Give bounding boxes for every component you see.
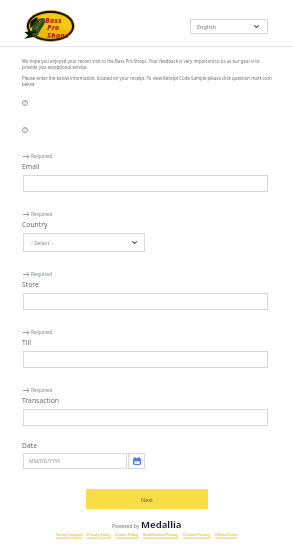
button[interactable]	[23, 175, 268, 192]
staticText: Medallia	[141, 518, 182, 531]
button[interactable]: MM/DD/YYYY	[23, 453, 127, 469]
button[interactable]	[23, 351, 268, 368]
staticText: Powered by	[112, 523, 141, 530]
button[interactable]: Privacy Policy	[87, 532, 111, 537]
staticText: Date	[22, 441, 38, 450]
button[interactable]: Official Rules	[215, 532, 238, 537]
staticText: Till	[22, 338, 32, 347]
staticText: Required	[31, 153, 53, 160]
button[interactable]: Cookie Policy	[115, 532, 139, 537]
staticText: ?	[24, 100, 26, 106]
staticText: Email	[22, 162, 40, 171]
staticText: Pro	[47, 22, 60, 32]
staticText: We hope you enjoyed your recent visit to…	[22, 58, 268, 70]
staticText: Transaction	[22, 396, 59, 405]
button[interactable]: Receipt code sample help	[22, 127, 28, 133]
staticText: Required	[31, 387, 53, 394]
button[interactable]: Contact Privacy	[183, 532, 211, 537]
staticText: - Select -	[31, 239, 53, 246]
staticText: Required	[31, 211, 53, 218]
button[interactable]: Modification Privacy	[143, 532, 179, 537]
button[interactable]: Next	[86, 489, 208, 509]
staticText: English	[197, 23, 217, 31]
staticText: ?	[24, 127, 26, 133]
button[interactable]: English	[190, 19, 268, 34]
button[interactable]: - Select -	[23, 233, 145, 252]
staticText: Country	[22, 220, 48, 229]
button[interactable]: Receipt code sample help	[22, 100, 28, 106]
staticText: Shops	[47, 30, 69, 40]
staticText: Please enter the below information, loca…	[22, 75, 272, 87]
staticText: Bass	[45, 15, 62, 25]
button[interactable]: Open calendar	[128, 453, 145, 469]
button[interactable]: Survey Support	[56, 532, 83, 537]
staticText: Required	[31, 271, 53, 278]
button[interactable]	[23, 409, 268, 426]
button[interactable]	[23, 293, 268, 310]
staticText: Next	[141, 496, 154, 503]
staticText: MM/DD/YYYY	[29, 458, 61, 465]
staticText: Store	[22, 280, 39, 289]
staticText: Required	[31, 329, 53, 336]
